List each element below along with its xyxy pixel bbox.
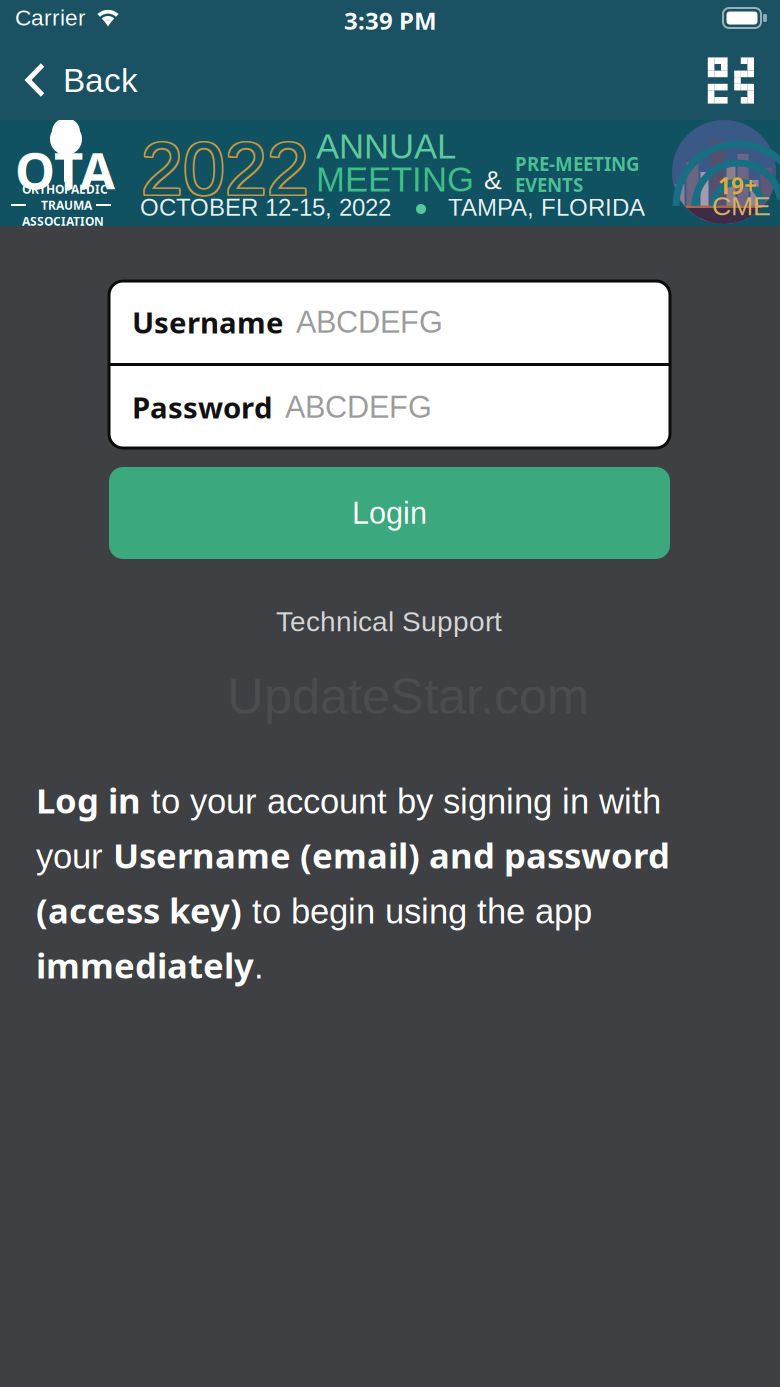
staticText: CME [712,191,771,221]
staticText: PRE-MEETING [515,151,640,176]
staticText: ORTHOPAEDIC [22,181,108,197]
staticText: EVENTS [515,172,583,197]
staticText: ASSOCIATION [22,213,104,229]
staticText: Technical Support [276,606,502,637]
staticText: TAMPA, FLORIDA [448,194,645,221]
staticText: ABCDEFG [285,390,432,424]
staticText: Carrier [15,5,86,30]
staticText: ANNUAL [316,127,456,166]
staticText: 2022 [140,128,308,212]
staticText: 3:39 PM [344,4,437,37]
staticText: OTA [15,135,115,204]
staticText: 19+ [718,170,757,201]
staticText: 2022 [142,126,310,209]
staticText: 2022 [141,127,309,210]
staticText: 2022 [140,126,308,209]
button[interactable]: Back [0,41,158,120]
staticText: Username [132,302,284,342]
staticText: 2022 [141,128,309,212]
button[interactable]: Login [109,467,670,559]
staticText: TRAUMA [41,197,92,213]
staticText: OCTOBER 12-15, 2022 [140,194,391,221]
staticText: 2022 [140,127,308,210]
staticText: Back [63,62,138,99]
staticText: 2022 [142,127,310,210]
staticText: UpdateStar.com [227,668,589,725]
staticText: 2022 [142,128,310,212]
staticText: Login [352,496,427,530]
button[interactable]: Technical Support [276,606,502,637]
staticText: Password [132,387,273,427]
staticText: & [484,165,502,195]
staticText: ABCDEFG [296,305,443,339]
button[interactable]: Scan QR code [684,41,780,120]
staticText: MEETING [316,160,474,199]
staticText: 2022 [141,126,309,209]
staticText: Log in to your account by signing in wit… [36,777,670,988]
